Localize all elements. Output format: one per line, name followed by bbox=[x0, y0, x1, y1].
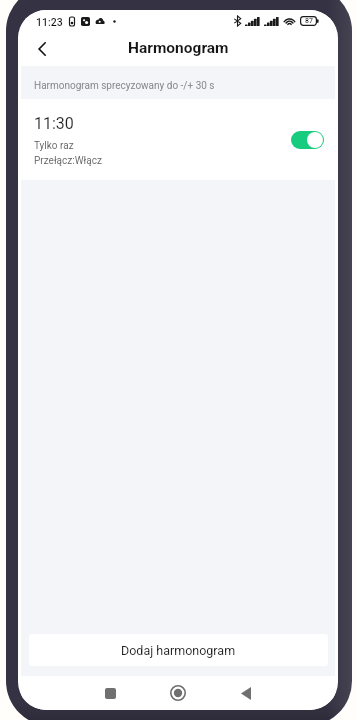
staticText: 11:30 bbox=[34, 114, 74, 133]
button[interactable]: 11:30 bbox=[21, 99, 335, 180]
button[interactable]: Home bbox=[161, 676, 195, 710]
button[interactable]: Back bbox=[229, 676, 263, 710]
staticText: Tylko raz bbox=[34, 140, 74, 152]
staticText: Przełącz:Włącz bbox=[34, 155, 102, 167]
staticText: Harmonogram sprecyzowany do -/+ 30 s bbox=[34, 80, 215, 92]
staticText: Dodaj harmonogram bbox=[121, 643, 236, 658]
button[interactable]: Dodaj harmonogram bbox=[29, 634, 328, 666]
staticText: 11:23 bbox=[36, 16, 63, 28]
button[interactable]: Back bbox=[27, 34, 57, 64]
staticText: 87 bbox=[305, 17, 313, 25]
button[interactable]: Recent apps bbox=[93, 676, 127, 710]
staticText: Harmonogram bbox=[128, 39, 229, 57]
button[interactable]: Toggle schedule on bbox=[291, 131, 324, 149]
